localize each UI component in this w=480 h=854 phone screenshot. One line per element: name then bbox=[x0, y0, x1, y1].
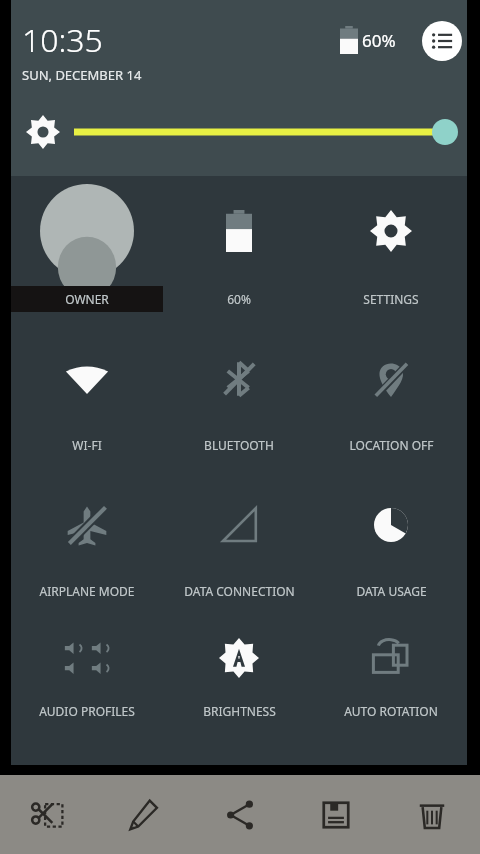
staticText: SUN, DECEMBER 14 bbox=[22, 66, 142, 84]
button[interactable]: Settings list bbox=[422, 21, 462, 61]
button[interactable]: LOCATION OFF bbox=[315, 326, 467, 472]
staticText: AUDIO PROFILES bbox=[39, 703, 135, 719]
button[interactable]: AIRPLANE MODE bbox=[11, 472, 163, 618]
button[interactable]: OWNER bbox=[11, 176, 163, 326]
button[interactable]: BLUETOOTH bbox=[163, 326, 315, 472]
staticText: 10:35 bbox=[22, 18, 103, 62]
staticText: DATA USAGE bbox=[356, 583, 427, 599]
staticText: AUTO ROTATION bbox=[344, 703, 438, 719]
staticText: AIRPLANE MODE bbox=[39, 583, 135, 599]
button[interactable]: Crop bbox=[0, 775, 96, 854]
staticText: 60% bbox=[362, 29, 396, 52]
button[interactable]: Save bbox=[288, 775, 384, 854]
button[interactable]: AUTO ROTATION bbox=[315, 618, 467, 738]
button[interactable]: Delete bbox=[384, 775, 480, 854]
button[interactable]: Brightness slider bbox=[11, 108, 467, 156]
button[interactable]: AUDIO PROFILES bbox=[11, 618, 163, 738]
staticText: BRIGHTNESS bbox=[203, 703, 276, 719]
button[interactable]: SETTINGS bbox=[315, 176, 467, 326]
button[interactable]: DATA USAGE bbox=[315, 472, 467, 618]
button[interactable]: Edit bbox=[96, 775, 192, 854]
button[interactable]: DATA CONNECTION bbox=[163, 472, 315, 618]
button[interactable]: WI-FI bbox=[11, 326, 163, 472]
button[interactable]: 60% bbox=[163, 176, 315, 326]
staticText: WI-FI bbox=[72, 437, 102, 453]
staticText: 60% bbox=[227, 291, 251, 307]
staticText: LOCATION OFF bbox=[349, 437, 434, 453]
staticText: BLUETOOTH bbox=[204, 437, 274, 453]
staticText: OWNER bbox=[65, 291, 109, 307]
button[interactable]: BRIGHTNESS bbox=[163, 618, 315, 738]
staticText: DATA CONNECTION bbox=[184, 583, 295, 599]
button[interactable]: Share bbox=[192, 775, 288, 854]
staticText: SETTINGS bbox=[363, 291, 419, 307]
